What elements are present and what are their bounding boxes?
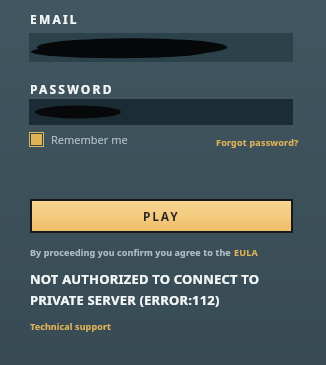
button[interactable]: Email input: [29, 33, 293, 62]
button[interactable]: Forgot password?: [216, 136, 299, 148]
staticText: Remember me: [51, 132, 128, 147]
button[interactable]: Password input: [29, 99, 293, 125]
staticText: By proceeding you confirm you agree to t…: [30, 246, 234, 258]
staticText: PRIVATE SERVER (ERROR:112): [30, 291, 220, 309]
staticText: NOT AUTHORIZED TO CONNECT TO: [30, 270, 260, 288]
button[interactable]: Technical support: [30, 320, 112, 332]
staticText: EULA: [234, 246, 258, 258]
button[interactable]: EULA: [234, 246, 258, 258]
staticText: Forgot password?: [216, 136, 299, 148]
button[interactable]: Remember me: [29, 132, 128, 147]
staticText: Technical support: [30, 320, 112, 332]
staticText: EMAIL: [30, 11, 79, 27]
button[interactable]: PLAY: [32, 201, 291, 231]
staticText: PLAY: [143, 208, 180, 224]
staticText: PASSWORD: [30, 81, 114, 97]
